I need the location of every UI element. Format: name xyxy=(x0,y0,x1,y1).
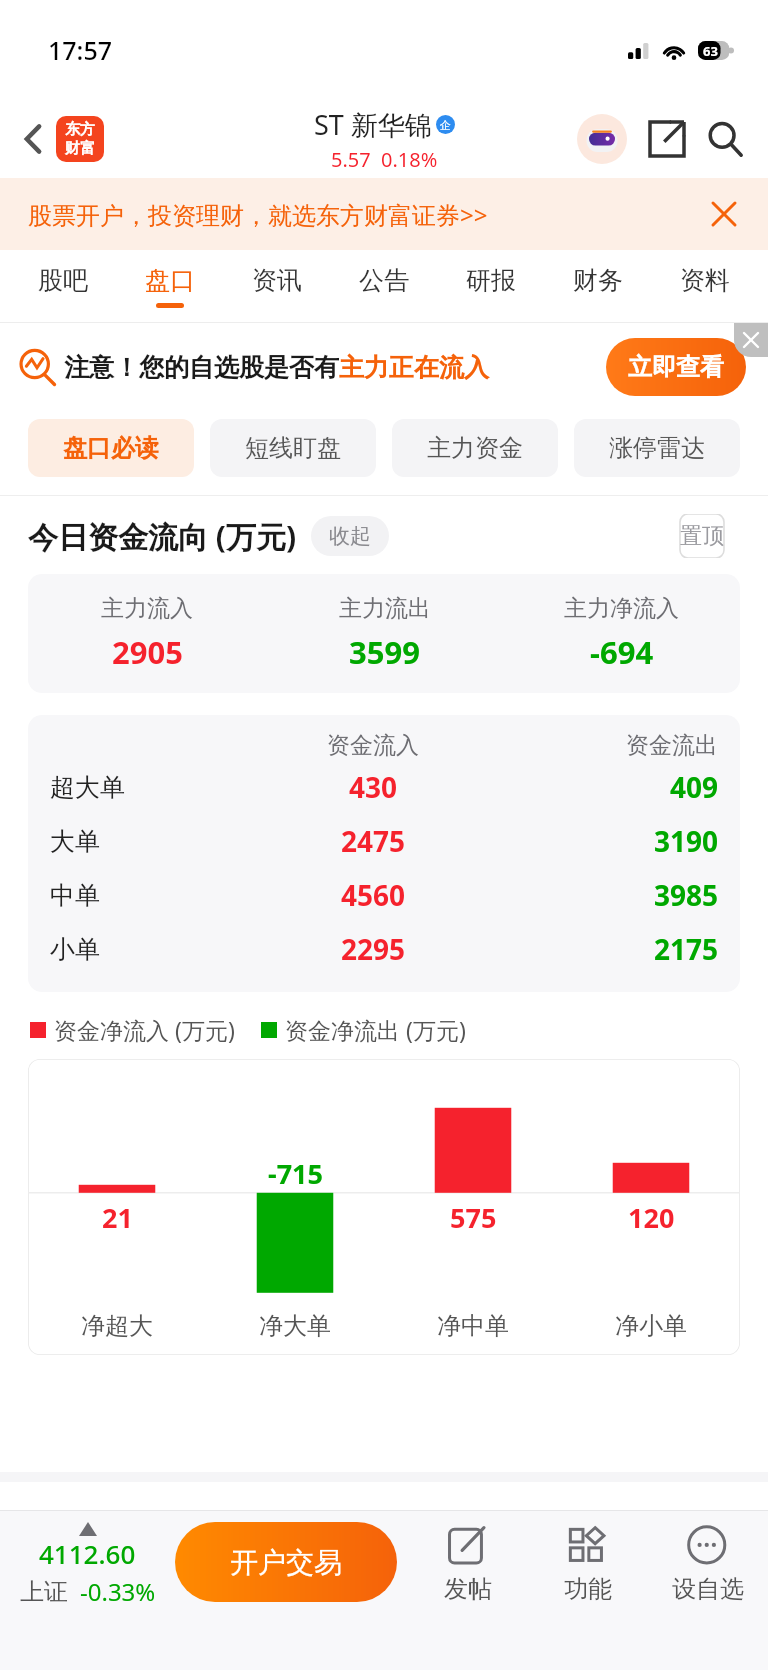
button[interactable]: 收起 xyxy=(311,516,389,556)
staticText: 净超大 xyxy=(28,1311,206,1341)
staticText: 涨停雷达 xyxy=(609,433,705,463)
button[interactable]: 功能 xyxy=(528,1522,648,1604)
staticText: 今日资金流向 (万元) xyxy=(28,516,297,557)
button[interactable]: 公告 xyxy=(330,250,437,322)
button[interactable]: 置顶 xyxy=(664,514,740,558)
staticText: 资金净流入 (万元) xyxy=(54,1014,235,1045)
button[interactable]: Close ad xyxy=(704,194,744,234)
staticText: 注意！ xyxy=(64,352,139,383)
button[interactable]: 股票开户，投资理财，就选东方财富证券>> xyxy=(0,178,768,250)
button[interactable]: Close promo xyxy=(734,323,768,357)
staticText: 小单 xyxy=(50,934,258,965)
staticText: ST 新华锦 xyxy=(314,106,432,143)
staticText: 主力净流入 xyxy=(564,594,679,623)
staticText: 资讯 xyxy=(252,265,302,296)
staticText: 3599 xyxy=(349,631,420,673)
staticText: 大单 xyxy=(50,826,258,857)
button[interactable]: Back xyxy=(14,116,52,162)
staticText: 立即查看 xyxy=(628,352,724,382)
staticText: 5.57 xyxy=(331,146,371,173)
button[interactable]: 资料 xyxy=(651,250,758,322)
staticText: 4560 xyxy=(258,876,488,914)
staticText: 21 xyxy=(102,1199,133,1236)
staticText: 430 xyxy=(258,768,488,806)
staticText: 净大单 xyxy=(206,1311,384,1341)
button[interactable]: East Money logo xyxy=(56,116,104,162)
staticText: 公告 xyxy=(359,265,409,296)
staticText: 研报 xyxy=(466,265,516,296)
staticText: 净中单 xyxy=(384,1311,562,1341)
staticText: 功能 xyxy=(564,1574,612,1604)
staticText: 企 xyxy=(440,118,451,132)
staticText: 置顶 xyxy=(680,522,724,550)
staticText: 开户交易 xyxy=(230,1545,342,1580)
staticText: 2475 xyxy=(258,822,488,860)
button[interactable]: 研报 xyxy=(437,250,544,322)
staticText: 收起 xyxy=(329,523,371,549)
staticText: 575 xyxy=(450,1199,497,1236)
staticText: 盘口必读 xyxy=(63,433,159,463)
button[interactable]: 主力资金 xyxy=(392,419,558,477)
staticText: 中单 xyxy=(50,880,258,911)
staticText: 发帖 xyxy=(444,1574,492,1604)
button[interactable]: 资讯 xyxy=(223,250,330,322)
staticText: 主力资金 xyxy=(427,433,523,463)
button[interactable]: Assistant xyxy=(576,113,628,165)
button[interactable]: 注意！ xyxy=(0,323,768,411)
staticText: 120 xyxy=(628,1199,675,1236)
staticText: 409 xyxy=(488,768,718,806)
button[interactable]: 立即查看 xyxy=(606,338,746,396)
staticText: 资料 xyxy=(680,265,730,296)
staticText: 4112.60 xyxy=(39,1536,136,1571)
staticText: -715 xyxy=(268,1155,323,1192)
staticText: 主力正在流入 xyxy=(339,352,489,383)
button[interactable]: 资金流入 xyxy=(28,715,740,992)
staticText: 2175 xyxy=(488,930,718,968)
staticText: 财富 xyxy=(65,139,95,158)
button[interactable]: 21 xyxy=(28,1059,740,1355)
button[interactable]: ST 新华锦 xyxy=(314,106,455,173)
staticText: 17:57 xyxy=(48,33,113,67)
staticText: -0.33% xyxy=(80,1575,156,1608)
staticText: 净小单 xyxy=(562,1311,740,1341)
button[interactable]: Search xyxy=(702,116,748,162)
button[interactable]: 盘口必读 xyxy=(28,419,194,477)
button[interactable]: 短线盯盘 xyxy=(210,419,376,477)
button[interactable]: 主力流入 xyxy=(28,574,740,693)
button[interactable]: 设自选 xyxy=(648,1522,768,1604)
staticText: 2905 xyxy=(112,631,183,673)
staticText: 2295 xyxy=(258,930,488,968)
staticText: 盘口 xyxy=(145,265,195,296)
staticText: 63 xyxy=(703,42,718,60)
button[interactable]: 发帖 xyxy=(407,1522,528,1604)
button[interactable]: 开户交易 xyxy=(175,1522,397,1602)
staticText: 3985 xyxy=(488,876,718,914)
staticText: 主力流出 xyxy=(339,594,431,623)
staticText: 设自选 xyxy=(672,1574,744,1604)
staticText: 资金流出 xyxy=(488,731,718,760)
staticText: 您的自选股是否有 xyxy=(139,352,339,383)
button[interactable]: Share xyxy=(644,116,690,162)
staticText: 上证 xyxy=(20,1577,68,1607)
staticText: 资金流入 xyxy=(258,731,488,760)
staticText: 0.18% xyxy=(381,146,438,173)
staticText: 超大单 xyxy=(50,772,258,803)
staticText: 短线盯盘 xyxy=(245,433,341,463)
button[interactable]: 财务 xyxy=(544,250,651,322)
staticText: 资金净流出 (万元) xyxy=(285,1014,466,1045)
button[interactable]: 盘口 xyxy=(116,250,223,322)
button[interactable]: 股吧 xyxy=(10,250,116,322)
staticText: 股票开户，投资理财，就选东方财富证券>> xyxy=(28,198,488,231)
staticText: 3190 xyxy=(488,822,718,860)
staticText: 主力流入 xyxy=(101,594,193,623)
button[interactable]: 涨停雷达 xyxy=(574,419,740,477)
staticText: 股吧 xyxy=(38,265,88,296)
staticText: -694 xyxy=(590,631,654,673)
button[interactable]: 4112.60 xyxy=(0,1522,175,1608)
staticText: 东方 xyxy=(65,120,95,139)
staticText: 财务 xyxy=(573,265,623,296)
